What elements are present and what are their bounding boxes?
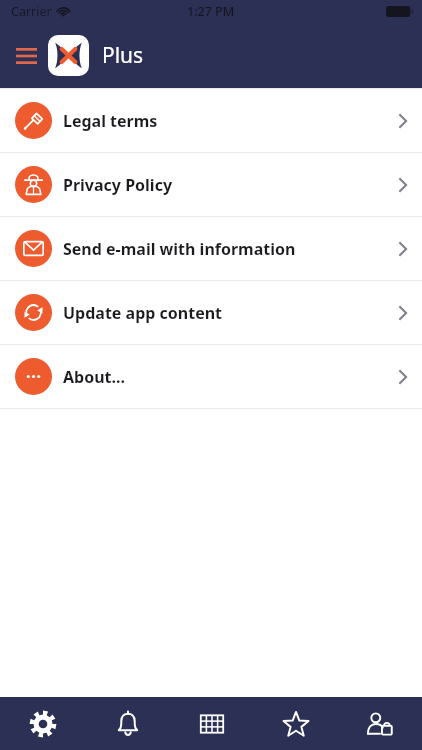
button[interactable]: Privacy Policy [0, 153, 422, 216]
staticText: 1:27 PM [187, 3, 235, 20]
staticText: Plus [102, 41, 144, 70]
button[interactable]: Favorites [254, 697, 338, 750]
staticText: Update app content [63, 302, 223, 324]
button[interactable]: App logo [48, 35, 89, 76]
button[interactable]: Legal terms [0, 89, 422, 152]
button[interactable]: Notifications [85, 697, 170, 750]
staticText: Send e-mail with information [63, 238, 296, 260]
staticText: Legal terms [63, 110, 158, 132]
button[interactable]: Update app content [0, 281, 422, 344]
button[interactable]: Open navigation menu [9, 39, 43, 73]
staticText: About... [63, 366, 126, 388]
button[interactable]: Send e-mail [0, 217, 422, 280]
button[interactable]: Catalog [170, 697, 254, 750]
staticText: Carrier [11, 3, 52, 20]
button[interactable]: Settings [0, 697, 85, 750]
staticText: Privacy Policy [63, 174, 173, 196]
button[interactable]: About [0, 345, 422, 408]
button[interactable]: Account privacy [338, 697, 422, 750]
